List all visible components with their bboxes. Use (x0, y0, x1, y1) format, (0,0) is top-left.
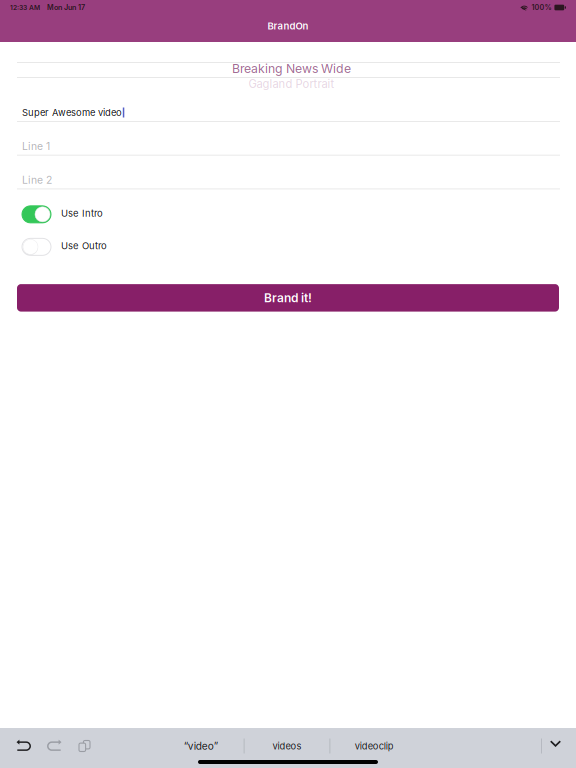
button[interactable]: videos (244, 737, 329, 755)
staticText: Use Intro (61, 208, 103, 219)
staticText: Brand it! (264, 291, 312, 305)
staticText: Line 2 (22, 174, 52, 186)
staticText: 12:33 AM (10, 3, 40, 12)
staticText: BrandOn (267, 20, 308, 32)
button[interactable]: Template picker (0, 42, 576, 94)
button[interactable]: Use Intro (0, 198, 576, 231)
staticText: Gagland Portrait (248, 77, 334, 91)
button[interactable]: Line 1 (0, 131, 576, 164)
staticText: Mon Jun 17 (47, 3, 85, 12)
staticText: Breaking News Wide (232, 61, 351, 76)
staticText: Line 1 (22, 140, 50, 152)
button[interactable]: Line 2 (0, 164, 576, 198)
button[interactable]: Brand it! (17, 284, 559, 312)
button[interactable]: Hide keyboard (542, 737, 569, 755)
button[interactable]: Paste (76, 737, 93, 755)
staticText: Super Awesome video (22, 107, 122, 118)
button[interactable]: Undo (14, 737, 31, 755)
button[interactable]: Use Outro (0, 231, 576, 263)
staticText: videoclip (355, 740, 394, 752)
staticText: 100% (531, 3, 551, 12)
staticText: videos (272, 740, 301, 752)
staticText: Use Outro (61, 240, 107, 252)
staticText: “video” (184, 740, 218, 752)
button[interactable]: Redo (47, 737, 64, 755)
button[interactable]: “video” (158, 737, 244, 755)
button[interactable]: videoclip (330, 737, 418, 755)
button[interactable]: Super Awesome video (0, 97, 576, 131)
